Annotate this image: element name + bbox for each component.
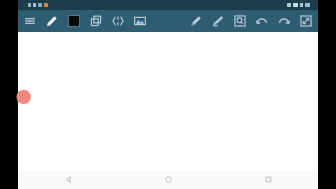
button[interactable]: Recents — [218, 170, 318, 189]
button[interactable]: Home — [118, 170, 218, 189]
button[interactable]: Pencil tool — [41, 10, 63, 32]
button[interactable]: Shapes — [85, 10, 107, 32]
button[interactable]: Menu — [19, 10, 41, 32]
button[interactable]: Drawing canvas — [18, 32, 318, 170]
button[interactable]: Eraser — [185, 10, 207, 32]
button[interactable]: Redo — [273, 10, 295, 32]
button[interactable]: Insert image — [129, 10, 151, 32]
button[interactable]: Highlighter — [207, 10, 229, 32]
button[interactable]: Fullscreen — [295, 10, 317, 32]
button[interactable]: Back — [18, 170, 118, 189]
button[interactable]: Undo — [251, 10, 273, 32]
button[interactable]: Color swatch — [63, 10, 85, 32]
button[interactable]: Code — [107, 10, 129, 32]
button[interactable]: Zoom — [229, 10, 251, 32]
